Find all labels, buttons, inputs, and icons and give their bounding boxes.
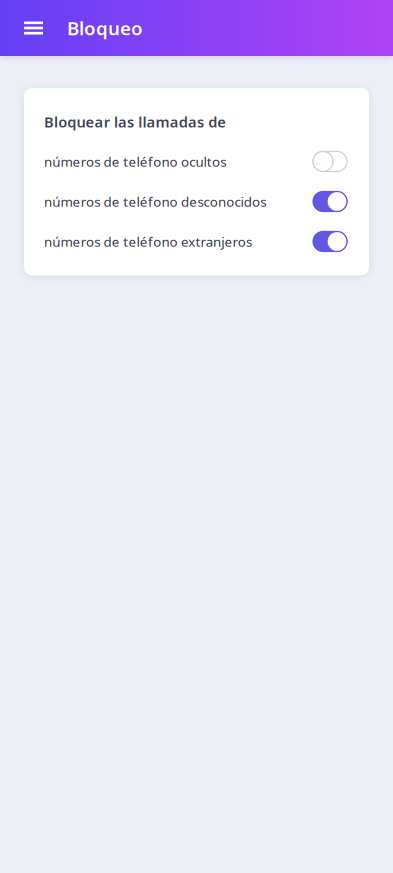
button[interactable]: números de teléfono desconocidos [24,181,369,221]
staticText: números de teléfono extranjeros [44,233,252,250]
staticText: números de teléfono ocultos [44,153,226,170]
staticText: Bloqueo [67,16,143,40]
button[interactable]: Menu [0,0,67,56]
staticText: Bloquear las llamadas de [44,112,226,131]
staticText: números de teléfono desconocidos [44,193,266,210]
button[interactable]: números de teléfono extranjeros [24,221,369,261]
button[interactable]: números de teléfono ocultos [24,141,369,181]
